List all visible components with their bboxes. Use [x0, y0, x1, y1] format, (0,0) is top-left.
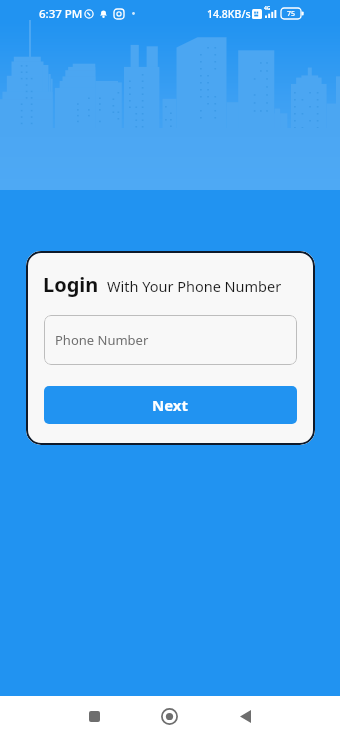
button[interactable]: Phone Number — [44, 315, 297, 365]
staticText: 4G — [264, 5, 271, 12]
button[interactable]: Home — [148, 696, 190, 737]
staticText: With Your Phone Number — [107, 276, 282, 296]
button[interactable]: Back — [224, 696, 266, 737]
staticText: 6:37 PM — [39, 6, 83, 22]
button[interactable]: Recent apps — [73, 696, 115, 737]
staticText: Phone Number — [55, 331, 149, 349]
staticText: 14.8KB/s — [207, 7, 251, 21]
button[interactable]: Next — [44, 386, 297, 424]
staticText: Login — [43, 271, 99, 298]
staticText: Next — [152, 395, 189, 415]
staticText: 75 — [287, 9, 296, 19]
